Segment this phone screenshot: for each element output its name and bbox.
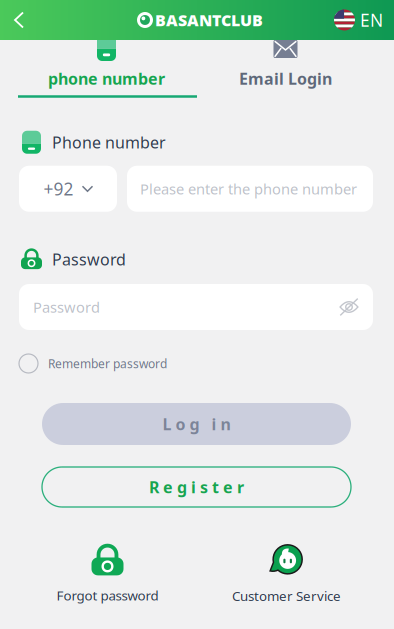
staticText: EN	[360, 8, 383, 31]
staticText: L o g i n	[162, 413, 230, 435]
button[interactable]: Back	[0, 0, 38, 40]
staticText: R e g i s t e r	[149, 476, 244, 498]
button[interactable]: phone number	[0, 40, 197, 89]
staticText: phone number	[48, 68, 165, 89]
staticText: +92	[43, 177, 73, 200]
button[interactable]: Email Login	[197, 40, 394, 89]
button[interactable]: Customer Service	[197, 544, 394, 605]
button[interactable]: Language English	[334, 0, 394, 40]
staticText: Customer Service	[232, 587, 341, 605]
button[interactable]: Forgot password	[0, 544, 197, 604]
staticText: BASANTCLUB	[155, 9, 263, 31]
staticText: Remember password	[48, 355, 167, 371]
staticText: Email Login	[239, 68, 332, 89]
staticText: Please enter the phone number	[140, 179, 357, 198]
staticText: Forgot password	[56, 586, 158, 604]
button[interactable]: Show password	[332, 290, 366, 324]
button[interactable]: Remember password	[0, 350, 167, 377]
staticText: Password	[33, 297, 100, 317]
button[interactable]: R e g i s t e r	[42, 467, 351, 507]
button[interactable]: L o g i n	[42, 403, 351, 445]
button[interactable]: Country code +92	[19, 166, 117, 212]
staticText: Password	[52, 249, 126, 270]
staticText: Phone number	[52, 132, 166, 153]
